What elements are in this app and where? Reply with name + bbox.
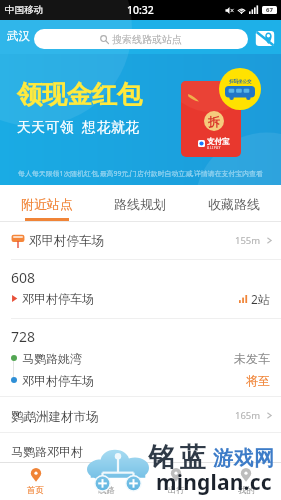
staticText: 将至	[246, 373, 270, 388]
staticText: 每人每天限领1次随机红包,最高99元,门店付款时自动立减,详情请在支付宝内查看	[0, 169, 281, 178]
staticText: 未发车	[234, 351, 270, 366]
staticText: 鹦鹉洲建材市场	[11, 409, 99, 425]
staticText: 搜索线路或站点	[112, 33, 182, 46]
staticText: 支付宝	[207, 137, 230, 146]
button[interactable]: 邓甲村停车场	[0, 222, 281, 259]
button[interactable]: 收藏路线	[187, 185, 281, 222]
staticText: 天天可领 想花就花	[17, 117, 140, 136]
staticText: 67	[266, 6, 273, 14]
staticText: 邓甲村停车场	[29, 233, 235, 249]
staticText: 出行	[168, 485, 185, 496]
staticText: 我的	[238, 485, 255, 496]
button[interactable]: 728	[0, 319, 281, 396]
staticText: 邓甲村停车场	[22, 291, 239, 306]
button[interactable]: 鹦鹉洲建材市场	[0, 397, 281, 432]
staticText: 领现金红包	[17, 79, 142, 110]
button[interactable]: 首页	[0, 463, 71, 500]
staticText: 马鹦路邓甲村	[11, 444, 83, 459]
staticText: 首页	[27, 485, 44, 496]
button[interactable]: 附近站点	[0, 185, 93, 222]
button[interactable]: 搜索线路或站点	[34, 29, 248, 49]
staticText: 10:32	[127, 3, 154, 17]
staticText: 收藏路线	[208, 196, 260, 212]
button[interactable]: 我的	[211, 463, 281, 500]
staticText: 拆	[208, 114, 220, 129]
staticText: 游戏网	[213, 446, 275, 471]
staticText: 728	[11, 327, 36, 346]
staticText: 邓甲村停车场	[22, 373, 246, 388]
staticText: 线路	[98, 485, 115, 496]
staticText: 武汉	[7, 29, 30, 43]
staticText: minglan.cc	[156, 468, 272, 497]
staticText: 扫码坐公交	[229, 79, 252, 85]
staticText: 155m	[235, 234, 261, 247]
button[interactable]: 出行	[141, 463, 211, 500]
staticText: 165m	[235, 409, 261, 422]
staticText: 608	[11, 268, 36, 287]
staticText: 2站	[251, 291, 270, 307]
staticText: 铭蓝	[146, 441, 208, 474]
button[interactable]: 路线规划	[93, 185, 187, 222]
button[interactable]: 608	[0, 260, 281, 318]
button[interactable]: 线路	[71, 463, 141, 500]
button[interactable]: Map	[254, 29, 275, 48]
staticText: ALIPAY	[207, 146, 222, 150]
staticText: 中国移动	[5, 4, 43, 16]
staticText: 附近站点	[21, 196, 73, 212]
staticText: 马鹦路姚湾	[22, 351, 234, 366]
button[interactable]: 武汉	[4, 27, 33, 45]
staticText: 路线规划	[114, 196, 166, 212]
